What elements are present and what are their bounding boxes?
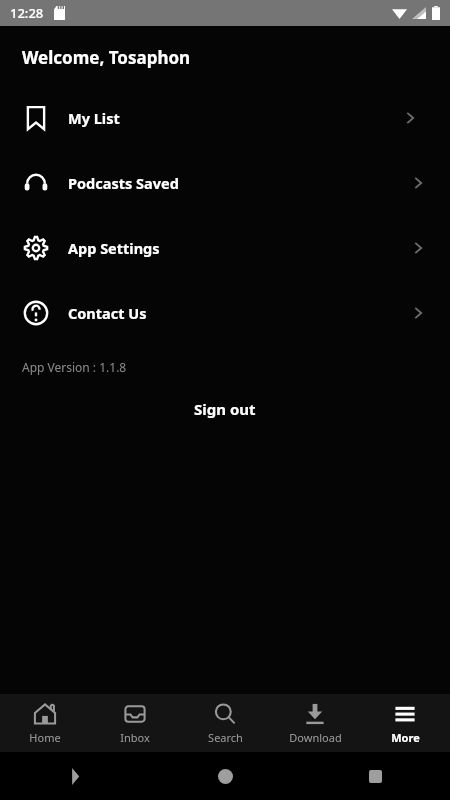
staticText: Inbox bbox=[120, 730, 150, 745]
button[interactable]: Home bbox=[150, 769, 300, 784]
staticText: App Version : 1.1.8 bbox=[22, 359, 127, 375]
button[interactable]: Contact Us bbox=[0, 280, 450, 345]
staticText: Search bbox=[208, 730, 243, 745]
staticText: Download bbox=[289, 730, 342, 745]
staticText: 12:28 bbox=[10, 4, 44, 22]
button[interactable]: Back bbox=[0, 768, 150, 785]
staticText: Podcasts Saved bbox=[68, 173, 179, 193]
staticText: My List bbox=[68, 108, 120, 128]
staticText: Home bbox=[29, 730, 61, 745]
button[interactable]: More bbox=[360, 696, 450, 751]
button[interactable]: Inbox bbox=[90, 696, 180, 751]
staticText: Contact Us bbox=[68, 303, 147, 323]
staticText: App Settings bbox=[68, 238, 160, 258]
button[interactable]: My List bbox=[0, 85, 450, 150]
button[interactable]: Recent apps bbox=[300, 770, 450, 783]
staticText: More bbox=[391, 730, 420, 745]
button[interactable]: Search bbox=[180, 696, 270, 751]
button[interactable]: App Settings bbox=[0, 215, 450, 280]
button[interactable]: Home bbox=[0, 696, 90, 751]
button[interactable]: Podcasts Saved bbox=[0, 150, 450, 215]
staticText: Welcome, Tosaphon bbox=[22, 46, 191, 69]
staticText: Sign out bbox=[194, 399, 256, 419]
button[interactable]: Download bbox=[270, 696, 360, 751]
button[interactable]: Sign out bbox=[0, 395, 450, 423]
